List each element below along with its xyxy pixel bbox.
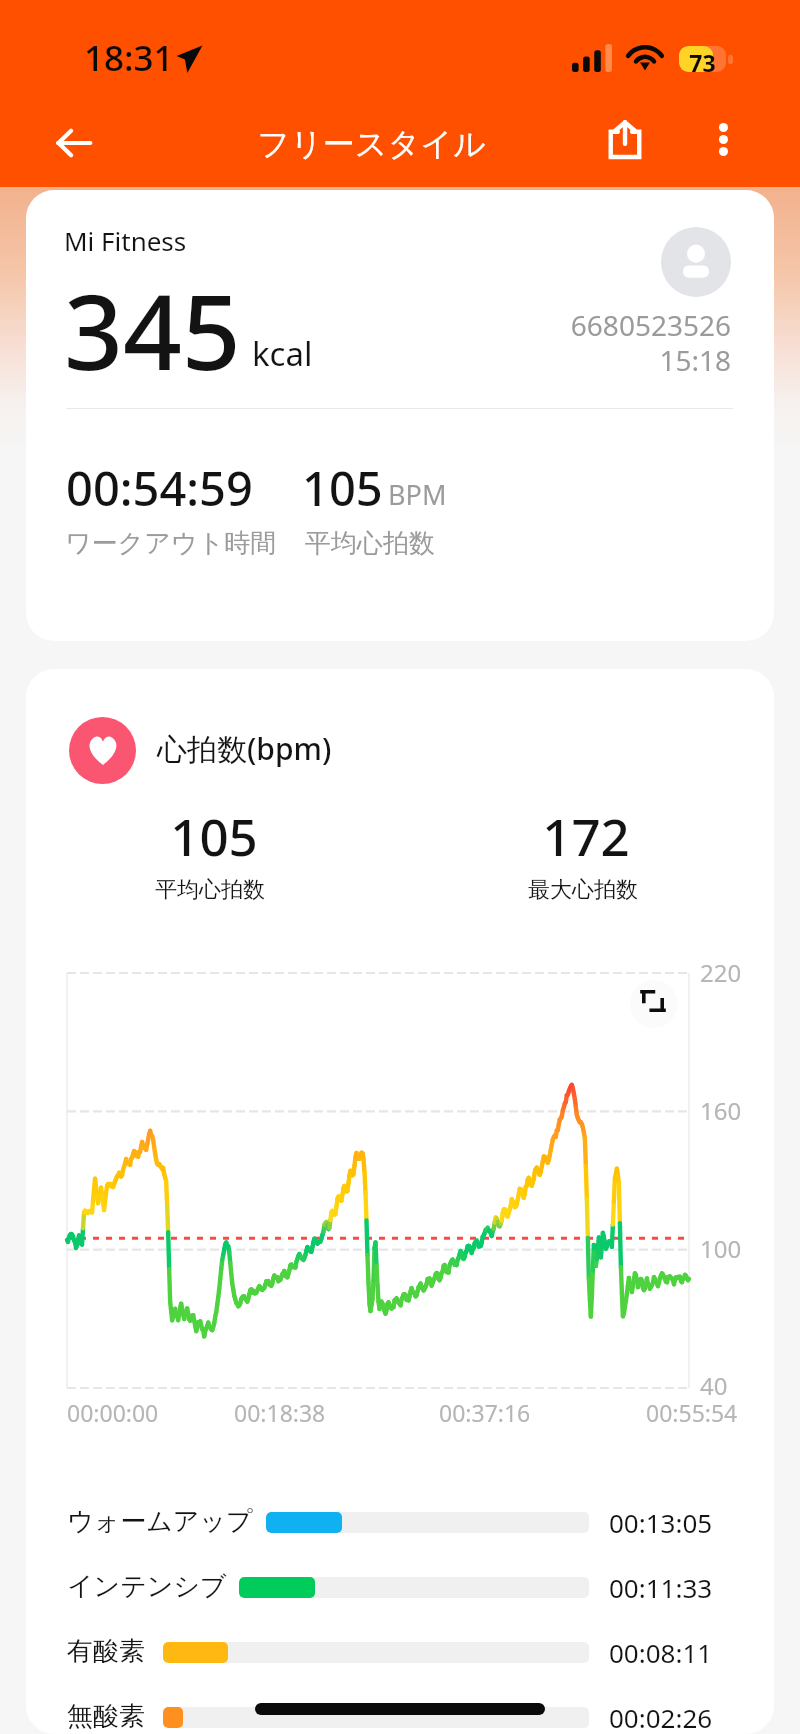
staticText: 345 [64,260,241,400]
staticText: 172 [542,801,630,870]
staticText: 40 [700,1369,728,1402]
button[interactable]: Expand chart [630,980,678,1028]
staticText: 00:00:00 [67,1397,159,1428]
staticText: Mi Fitness [64,223,187,258]
staticText: 18:31 [84,34,174,82]
staticText: ワークアウト時間 [65,527,277,560]
staticText: 160 [700,1094,742,1127]
staticText: 100 [700,1232,742,1265]
staticText: 6680523526 [431,306,731,344]
staticText: 00:11:33 [609,1570,713,1605]
button[interactable]: Back [42,111,106,175]
staticText: 00:13:05 [609,1505,713,1540]
staticText: BPM [388,476,447,513]
staticText: 15:18 [431,341,731,379]
staticText: 00:54:59 [66,456,253,520]
staticText: 心拍数(bpm) [157,728,332,769]
staticText: 00:37:16 [439,1397,531,1428]
staticText: kcal [252,331,313,376]
staticText: フリースタイル [257,124,486,164]
staticText: 00:08:11 [609,1635,713,1670]
staticText: 無酸素 [67,1700,145,1733]
staticText: 220 [700,956,742,989]
staticText: 00:18:38 [234,1397,326,1428]
staticText: 平均心拍数 [305,527,435,560]
staticText: 00:55:54 [646,1397,738,1428]
staticText: 平均心拍数 [155,876,265,904]
staticText: 有酸素 [67,1635,145,1668]
staticText: 最大心拍数 [528,876,638,904]
staticText: 105 [302,456,383,520]
button[interactable]: More options [692,108,755,171]
staticText: 00:02:26 [609,1700,713,1734]
staticText: 105 [170,801,258,870]
staticText: インテンシブ [67,1570,227,1603]
staticText: ウォームアップ [67,1505,253,1538]
staticText: 73 [679,47,726,78]
button[interactable]: Share [593,107,656,170]
